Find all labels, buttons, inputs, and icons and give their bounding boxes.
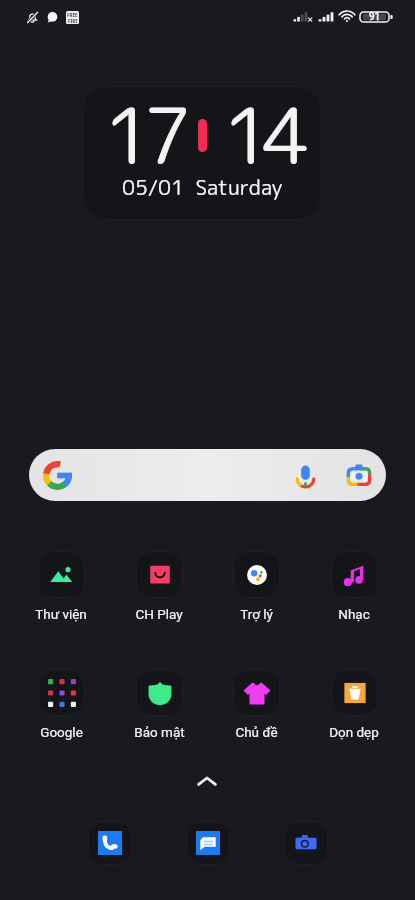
button[interactable]: Thư viện — [14, 551, 108, 622]
staticText: Dọn dẹp — [329, 724, 379, 740]
staticText: Google — [40, 724, 83, 740]
staticText: CH Play — [135, 606, 183, 622]
button[interactable]: CH Play — [112, 551, 206, 622]
staticText: 17 — [104, 86, 183, 189]
other: Google Search — [43, 461, 72, 490]
staticText: Thư viện — [35, 606, 87, 622]
staticText: Bảo mật — [134, 724, 185, 740]
button[interactable]: Nhạc — [307, 551, 401, 622]
button[interactable]: Dọn dẹp — [307, 669, 401, 740]
button[interactable]: Trợ lý — [209, 551, 303, 622]
other: Google Lens — [346, 462, 372, 488]
staticText: FREE — [67, 12, 78, 18]
staticText: 05/01 Saturday — [122, 172, 283, 201]
staticText: 91 — [369, 11, 381, 23]
button[interactable]: Chủ đề — [209, 669, 303, 740]
button[interactable]: Camera — [284, 821, 328, 865]
staticText: 14 — [223, 86, 302, 189]
button[interactable]: Phone — [88, 821, 132, 865]
button[interactable]: Messages — [186, 821, 230, 865]
button[interactable]: Google — [14, 669, 108, 740]
staticText: FIRE — [68, 18, 78, 24]
staticText: Nhạc — [338, 606, 370, 622]
button[interactable]: Google Search — [29, 449, 386, 501]
staticText: Trợ lý — [240, 606, 273, 622]
button[interactable]: Open app drawer — [197, 772, 217, 792]
other: Voice search — [294, 464, 317, 487]
button[interactable]: 17 — [82, 86, 322, 220]
staticText: Chủ đề — [235, 724, 278, 740]
button[interactable]: Bảo mật — [112, 669, 206, 740]
